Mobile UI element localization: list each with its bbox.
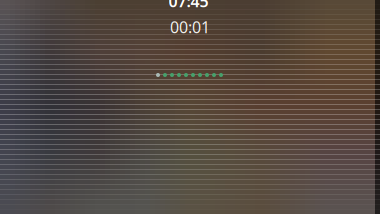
staticText: 00:01 (170, 16, 210, 38)
staticText: 07:45 (168, 0, 208, 12)
